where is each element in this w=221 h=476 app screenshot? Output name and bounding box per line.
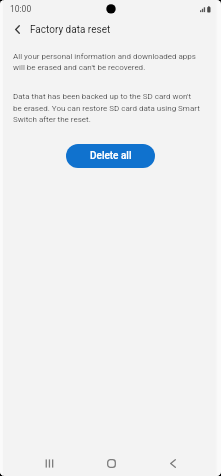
button[interactable]: Home	[89, 450, 133, 476]
staticText: All your personal information and downlo…	[13, 52, 201, 72]
staticText: Factory data reset	[30, 24, 111, 36]
staticText: 10:00	[10, 4, 32, 14]
button[interactable]: Recent apps	[27, 450, 71, 476]
button[interactable]: Delete all	[66, 144, 155, 168]
button[interactable]: Navigate up	[6, 19, 28, 40]
staticText: Data that has been backed up to the SD c…	[13, 92, 201, 124]
staticText: Delete all	[90, 150, 132, 162]
button[interactable]: Back	[151, 450, 195, 476]
